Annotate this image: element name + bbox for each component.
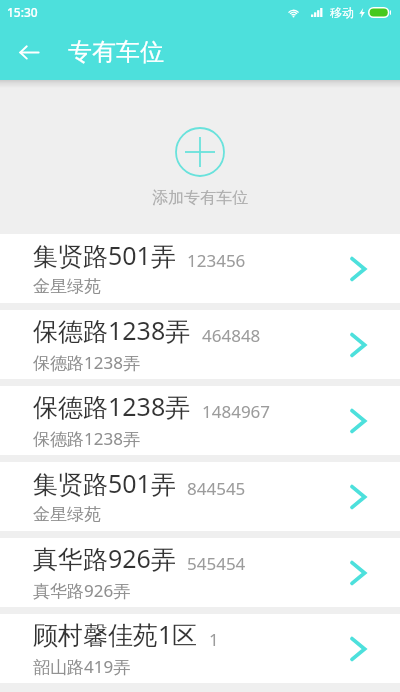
button[interactable]: 顾村馨佳苑1区 [0,614,400,683]
staticText: 顾村馨佳苑1区 [33,617,198,651]
button[interactable]: 集贤路501弄 [0,462,400,531]
button[interactable]: 保德路1238弄 [0,310,400,379]
staticText: 保德路1238弄 [33,313,191,347]
button[interactable]: 保德路1238弄 [0,386,400,455]
button[interactable]: Back [5,28,53,76]
staticText: 1 [209,628,219,651]
staticText: 464848 [202,324,261,347]
staticText: 844545 [187,477,246,500]
staticText: 移动 [330,5,354,20]
staticText: 1484967 [202,400,271,423]
staticText: 集贤路501弄 [33,466,176,500]
button[interactable]: 集贤路501弄 [0,234,400,303]
staticText: 15:30 [7,4,38,20]
staticText: 保德路1238弄 [33,389,191,423]
button[interactable]: 添加专有车位 [152,127,248,208]
staticText: 金星绿苑 [33,276,101,297]
staticText: 集贤路501弄 [33,238,176,272]
staticText: 123456 [187,249,246,272]
button[interactable]: 真华路926弄 [0,538,400,607]
staticText: 真华路926弄 [33,541,176,575]
staticText: 金星绿苑 [33,504,101,525]
staticText: 保德路1238弄 [33,351,140,374]
staticText: 保德路1238弄 [33,427,140,450]
staticText: 545454 [187,552,246,575]
staticText: 专有车位 [68,37,164,67]
staticText: 真华路926弄 [33,579,131,602]
staticText: 韶山路419弄 [33,655,131,678]
staticText: 添加专有车位 [152,188,248,208]
